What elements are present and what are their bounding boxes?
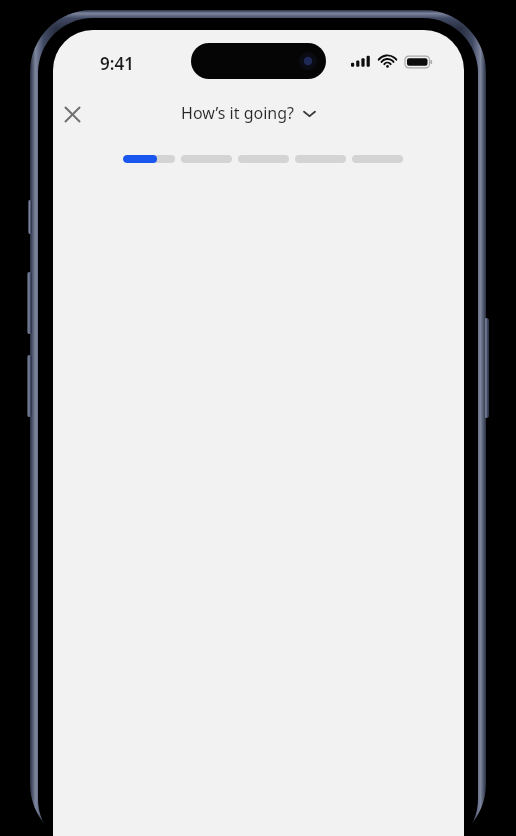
button[interactable]: Step 5 of 5 <box>352 155 403 163</box>
button[interactable]: How’s it going? <box>181 98 316 128</box>
button[interactable]: Step 1 of 5 <box>123 155 175 163</box>
button[interactable]: Step 4 of 5 <box>295 155 346 163</box>
button[interactable]: Close <box>54 96 90 132</box>
staticText: 9:41 <box>100 52 134 75</box>
button[interactable]: Step 3 of 5 <box>238 155 289 163</box>
button[interactable]: Step 2 of 5 <box>181 155 232 163</box>
staticText: How’s it going? <box>181 102 294 124</box>
